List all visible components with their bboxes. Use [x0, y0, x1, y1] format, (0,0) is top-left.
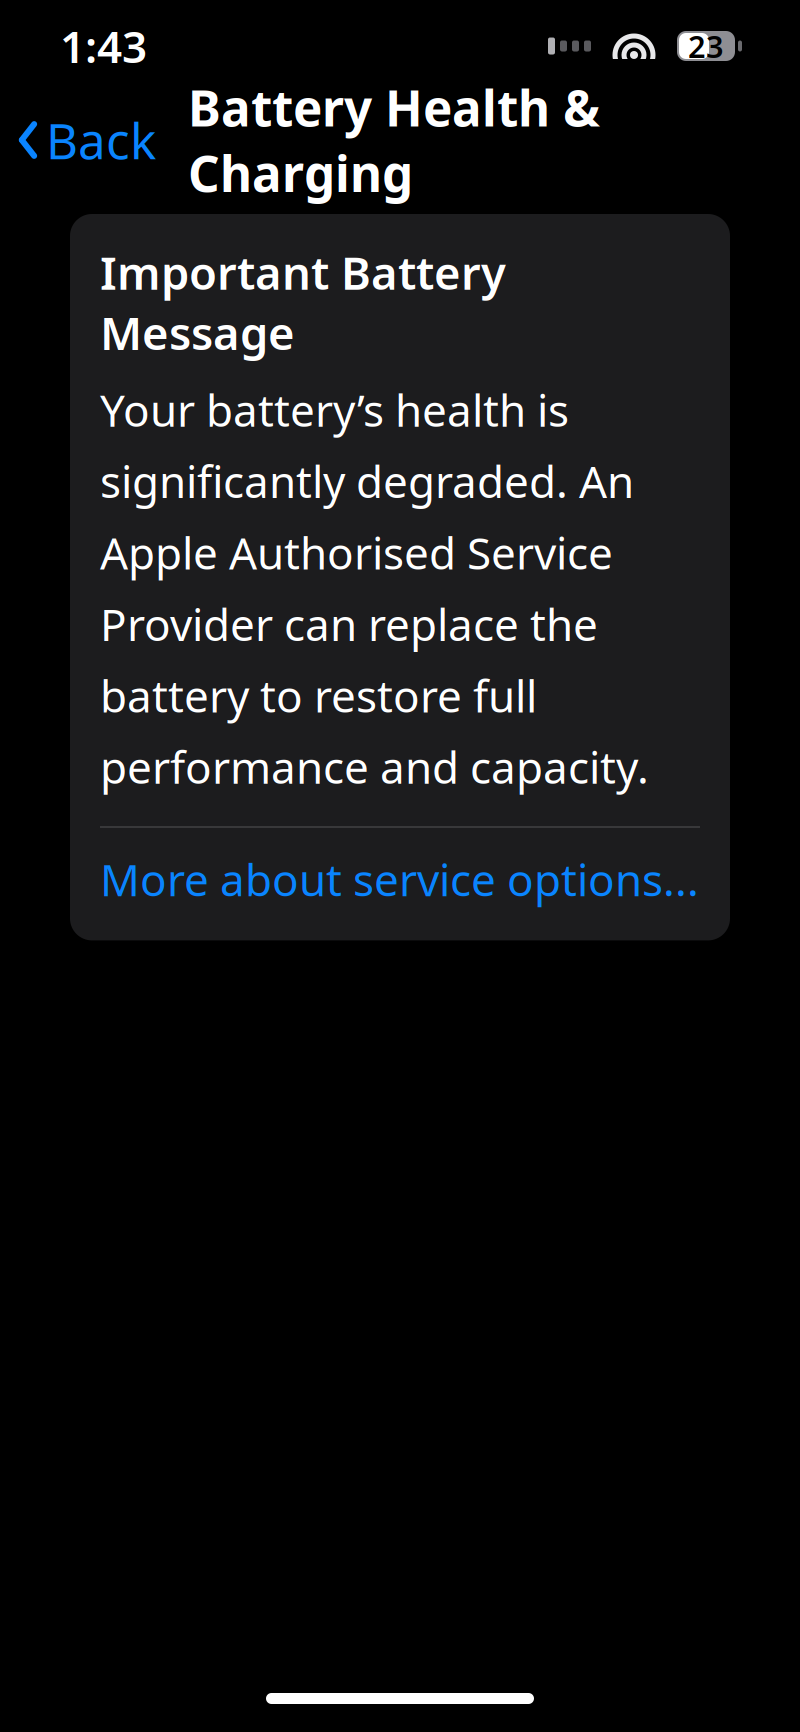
- staticText: Your battery is currently supporting nor…: [100, 1632, 555, 1732]
- staticText: More about service options...: [100, 850, 699, 908]
- staticText: Battery Health & Charging: [188, 74, 600, 205]
- staticText: 23: [688, 26, 724, 66]
- staticText: Your battery’s health is significantly d…: [100, 380, 649, 796]
- staticText: Important Battery Message: [100, 242, 506, 362]
- staticText: Back: [46, 107, 156, 173]
- button[interactable]: Back: [0, 95, 166, 185]
- button[interactable]: More about service options...: [100, 828, 700, 930]
- staticText: 1:43: [60, 17, 147, 75]
